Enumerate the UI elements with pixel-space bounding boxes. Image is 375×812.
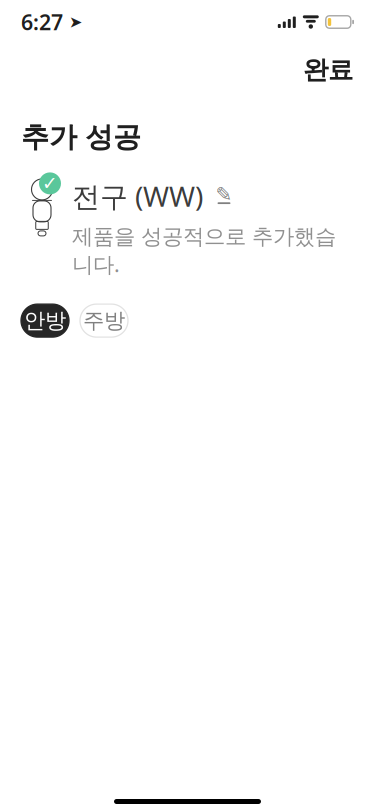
button[interactable]: 안방 <box>21 304 69 337</box>
button[interactable]: 완료 <box>295 45 361 94</box>
button[interactable]: 이름 편집 <box>214 184 234 207</box>
staticText: 전구 (WW) <box>72 177 203 215</box>
staticText: 완료 <box>303 54 353 85</box>
staticText: ✓ <box>42 173 58 194</box>
staticText: ✎ <box>215 183 232 206</box>
staticText: 제품을 성공적으로 추가했습니다. <box>72 224 336 278</box>
staticText: 추가 성공 <box>21 120 141 154</box>
staticText: 6:27 <box>21 8 63 36</box>
staticText: ➤ <box>69 13 82 31</box>
staticText: 주방 <box>83 307 125 334</box>
staticText: 안방 <box>24 307 66 334</box>
button[interactable]: 주방 <box>80 304 128 337</box>
